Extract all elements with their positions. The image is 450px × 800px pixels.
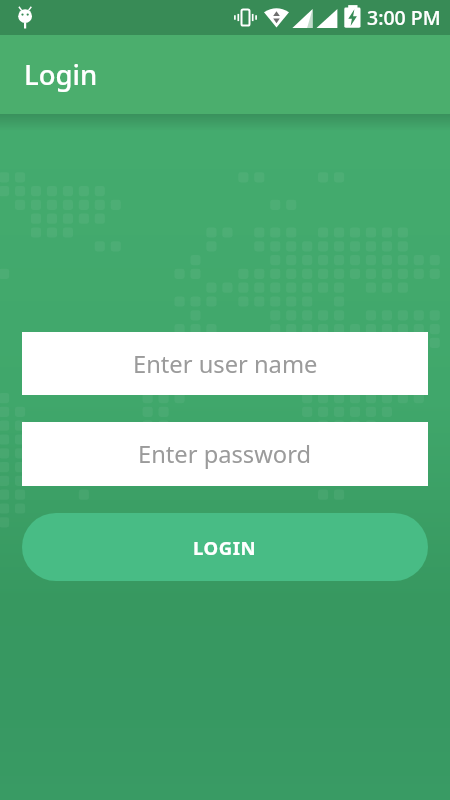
staticText: Login [24,56,98,93]
button[interactable]: Enter user name [22,332,428,395]
staticText: Enter user name [133,348,318,380]
staticText: LOGIN [193,535,257,560]
staticText: 3:00 PM [367,4,441,31]
button[interactable]: Enter password [22,422,428,486]
button[interactable]: LOGIN [22,513,428,581]
staticText: Enter password [138,438,312,470]
